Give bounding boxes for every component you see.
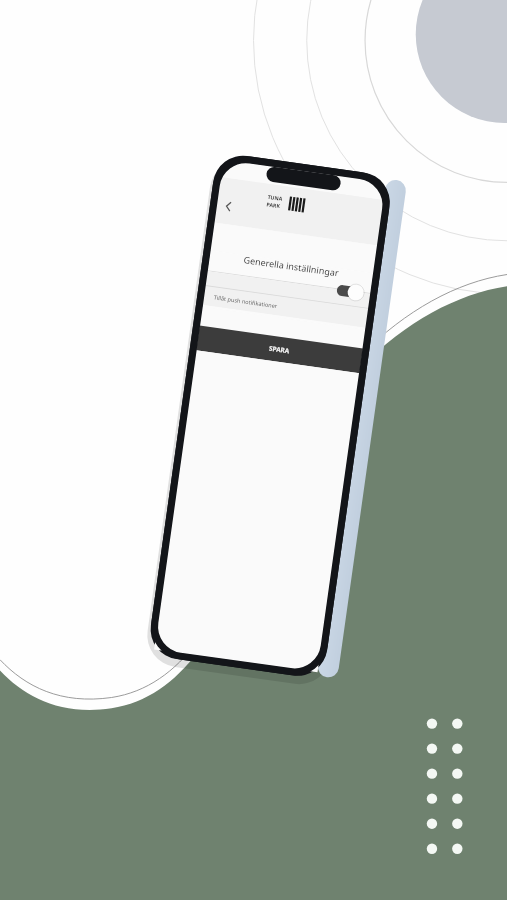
button[interactable]: Tuna Park app settings preview xyxy=(0,0,507,900)
